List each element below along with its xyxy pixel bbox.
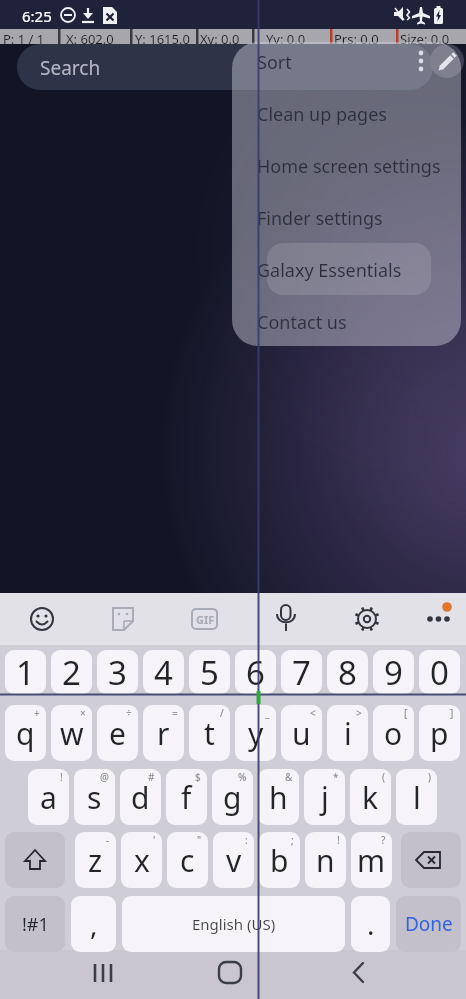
button[interactable]: z <box>75 832 116 888</box>
staticText: !#1 <box>22 912 49 937</box>
staticText: c <box>180 840 195 881</box>
button[interactable]: 1 <box>5 650 46 694</box>
staticText: English (US) <box>192 914 276 934</box>
staticText: Galaxy Essentials <box>257 258 402 283</box>
staticText: Prs: 0.0 <box>334 30 379 48</box>
button[interactable]: 6 <box>235 650 276 694</box>
staticText: / <box>220 706 224 720</box>
staticText: @ <box>100 770 109 784</box>
staticText: Contact us <box>257 310 347 335</box>
button[interactable]: Galaxy Essentials <box>233 246 460 296</box>
button[interactable]: n <box>305 832 346 888</box>
button[interactable]: w <box>51 705 92 761</box>
staticText: , <box>90 905 98 943</box>
button[interactable]: Finder settings <box>233 194 460 244</box>
button[interactable]: a <box>28 769 69 825</box>
staticText: u <box>292 713 311 754</box>
staticText: ( <box>382 770 385 784</box>
button[interactable]: . <box>351 896 390 952</box>
staticText: 1 <box>16 650 35 694</box>
staticText: j <box>321 777 329 818</box>
staticText: Y: 1615.0 <box>135 30 190 48</box>
staticText: Size: 0.0 <box>400 30 450 48</box>
staticText: Finder settings <box>257 206 383 231</box>
staticText: > <box>356 706 362 720</box>
staticText: 9 <box>384 650 403 694</box>
staticText: v <box>226 840 242 881</box>
staticText: ! <box>60 770 63 784</box>
button[interactable]: m <box>351 832 392 888</box>
staticText: P: 1 / 1 <box>3 30 45 48</box>
staticText: r <box>157 713 170 754</box>
staticText: Yv: 0.0 <box>266 30 306 48</box>
button[interactable] <box>401 832 461 888</box>
button[interactable]: o <box>373 705 414 761</box>
button[interactable] <box>430 44 464 78</box>
button[interactable]: 3 <box>97 650 138 694</box>
staticText: 8 <box>338 650 357 694</box>
button[interactable]: 9 <box>373 650 414 694</box>
staticText: & <box>285 770 293 784</box>
button[interactable]: 7 <box>281 650 322 694</box>
staticText: × <box>80 706 86 720</box>
button[interactable]: l <box>396 769 437 825</box>
staticText: 4 <box>154 650 173 694</box>
staticText: p <box>430 713 449 754</box>
button[interactable]: k <box>350 769 391 825</box>
button[interactable]: b <box>259 832 300 888</box>
button[interactable]: i <box>327 705 368 761</box>
staticText: = <box>172 706 178 720</box>
button[interactable]: d <box>120 769 161 825</box>
button[interactable]: q <box>5 705 46 761</box>
button[interactable]: v <box>213 832 254 888</box>
button[interactable]: c <box>167 832 208 888</box>
staticText: x <box>134 840 150 881</box>
staticText: < <box>310 706 316 720</box>
button[interactable]: !#1 <box>5 896 65 952</box>
button[interactable]: u <box>281 705 322 761</box>
staticText: f <box>181 777 192 818</box>
button[interactable]: s <box>74 769 115 825</box>
button[interactable]: x <box>121 832 162 888</box>
button[interactable]: h <box>258 769 299 825</box>
button[interactable]: Sort <box>233 38 460 88</box>
button[interactable] <box>5 832 65 888</box>
staticText: 6:25 <box>22 6 52 26</box>
button[interactable]: e <box>97 705 138 761</box>
button[interactable]: 5 <box>189 650 230 694</box>
button[interactable]: Clean up pages <box>233 90 460 140</box>
staticText: y <box>248 713 264 754</box>
staticText: 5 <box>200 650 219 694</box>
staticText: ! <box>337 833 340 847</box>
button[interactable]: f <box>166 769 207 825</box>
staticText: # <box>148 770 155 784</box>
button[interactable]: 8 <box>327 650 368 694</box>
staticText: X: 602.0 <box>66 30 114 48</box>
staticText: Sort <box>257 50 292 75</box>
button[interactable]: Done <box>396 896 461 952</box>
button[interactable]: p <box>419 705 460 761</box>
button[interactable]: j <box>304 769 345 825</box>
button[interactable]: Contact us <box>233 298 460 348</box>
staticText: ' <box>153 833 156 847</box>
button[interactable]: 0 <box>419 650 460 694</box>
button[interactable]: Search <box>17 44 433 90</box>
staticText: 3 <box>108 650 127 694</box>
staticText: Done <box>405 911 453 937</box>
staticText: s <box>87 777 102 818</box>
staticText: Search <box>40 55 101 81</box>
staticText: GIF <box>196 612 215 627</box>
button[interactable]: Home screen settings <box>233 142 460 192</box>
button[interactable]: r <box>143 705 184 761</box>
staticText: : <box>245 833 248 847</box>
button[interactable]: y <box>235 705 276 761</box>
button[interactable]: 4 <box>143 650 184 694</box>
staticText: ÷ <box>126 706 132 720</box>
button[interactable]: t <box>189 705 230 761</box>
staticText: 7 <box>292 650 311 694</box>
button[interactable]: English (US) <box>122 896 345 952</box>
button[interactable]: 2 <box>51 650 92 694</box>
staticText: g <box>223 777 242 818</box>
button[interactable]: g <box>212 769 253 825</box>
button[interactable]: , <box>71 896 116 952</box>
